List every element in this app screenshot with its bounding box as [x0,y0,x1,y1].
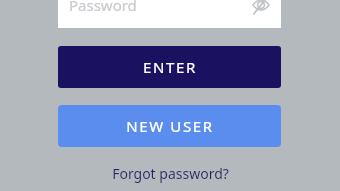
button[interactable]: NEW USER [58,105,281,147]
staticText: NEW USER [126,116,214,136]
button[interactable]: Forgot password? [112,161,229,185]
button[interactable]: Toggle password visibility [251,0,271,15]
button[interactable]: Password [58,0,281,28]
staticText: ENTER [143,57,197,77]
button[interactable]: ENTER [58,46,281,88]
staticText: Password [69,0,137,15]
staticText: Forgot password? [112,164,229,183]
